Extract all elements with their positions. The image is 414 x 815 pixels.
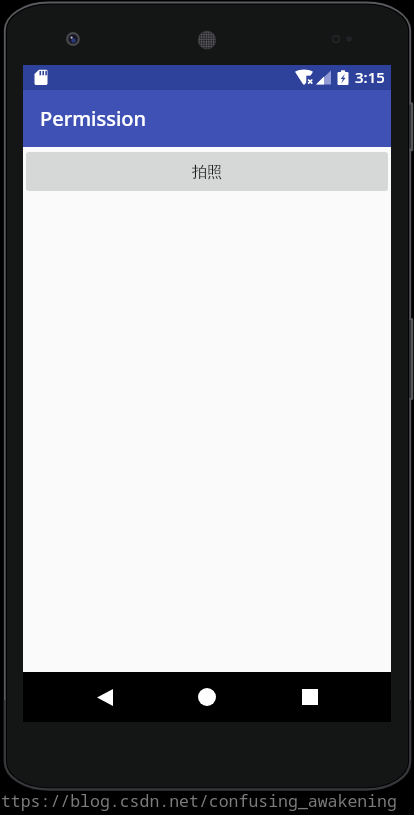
button[interactable]: 拍照 bbox=[26, 152, 388, 191]
button[interactable]: Back bbox=[80, 672, 129, 722]
staticText: https://blog.csdn.net/confusing_awakenin… bbox=[0, 789, 397, 811]
staticText: 3:15 bbox=[355, 67, 385, 87]
button[interactable]: Home bbox=[182, 672, 232, 722]
button[interactable]: Recent apps bbox=[285, 672, 334, 722]
staticText: Permission bbox=[40, 105, 147, 132]
staticText: 拍照 bbox=[192, 162, 223, 181]
